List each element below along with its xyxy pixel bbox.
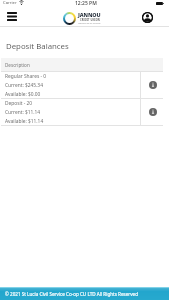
staticText: Available: $0.00 — [5, 91, 41, 98]
button[interactable]: Account — [137, 8, 158, 27]
button[interactable]: Menu — [0, 8, 24, 27]
button[interactable]: Deposit - 20 — [1, 99, 163, 125]
staticText: Deposit - 20 — [5, 100, 33, 107]
staticText: Regular Shares - 0 — [5, 73, 47, 80]
button[interactable]: Info — [146, 105, 160, 119]
staticText: Current: $11.14 — [5, 109, 41, 116]
staticText: Deposit Balances — [6, 41, 69, 52]
staticText: Carrier — [3, 0, 17, 6]
staticText: Current: $245.34 — [5, 82, 43, 89]
staticText: Together we are stronger — [78, 22, 101, 25]
button[interactable]: Regular Shares - 0 — [1, 72, 163, 98]
staticText: CREDIT UNION — [80, 18, 100, 21]
staticText: 12:25 PM — [75, 0, 97, 7]
staticText: Description — [5, 62, 30, 68]
staticText: Available: $11.14 — [5, 118, 44, 125]
button[interactable]: Info — [146, 78, 160, 92]
staticText: JANNOU — [78, 11, 101, 18]
staticText: © 2021 St Lucia Civil Service Co-op CU L… — [5, 291, 138, 297]
